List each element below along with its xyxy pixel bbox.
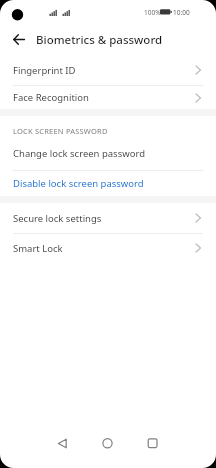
button[interactable] (144, 436, 216, 468)
staticText: Biometrics & password (36, 32, 163, 48)
staticText: Smart Lock (13, 242, 63, 255)
button[interactable]: Face Recognition (0, 86, 216, 109)
button[interactable] (8, 28, 30, 50)
staticText: Face Recognition (13, 91, 89, 104)
staticText: Disable lock screen password (13, 177, 144, 190)
staticText: 10:00 (173, 8, 190, 17)
button[interactable]: Smart Lock (0, 234, 216, 262)
staticText: Fingerprint ID (13, 64, 76, 77)
button[interactable]: Disable lock screen password (0, 171, 216, 196)
button[interactable]: Secure lock settings (0, 203, 216, 233)
staticText: Secure lock settings (13, 212, 102, 225)
staticText: LOCK SCREEN PASSWORD (13, 126, 108, 136)
button[interactable]: Change lock screen password (0, 137, 216, 170)
button[interactable] (72, 436, 144, 468)
button[interactable] (0, 436, 72, 468)
staticText: Change lock screen password (13, 147, 146, 160)
staticText: 100% (144, 8, 161, 17)
button[interactable]: Fingerprint ID (0, 55, 216, 85)
